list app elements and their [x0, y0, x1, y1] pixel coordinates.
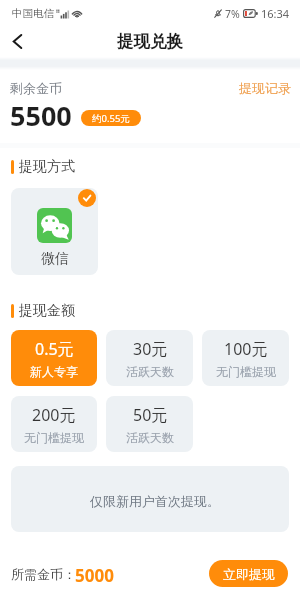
- staticText: 200元: [32, 404, 76, 426]
- staticText: 7%: [225, 7, 240, 21]
- staticText: 100元: [224, 338, 268, 360]
- staticText: 提现记录: [239, 80, 291, 96]
- button[interactable]: 50元: [106, 396, 193, 452]
- staticText: 新人专享: [30, 364, 78, 379]
- staticText: 30元: [133, 338, 168, 360]
- button[interactable]: 30元: [106, 330, 193, 386]
- staticText: 提现兑换: [117, 31, 183, 52]
- button[interactable]: 立即提现: [209, 560, 288, 587]
- staticText: 剩余金币: [10, 80, 62, 96]
- staticText: 0.5元: [35, 338, 74, 360]
- button[interactable]: 微信: [11, 188, 98, 275]
- staticText: 5000: [75, 564, 114, 587]
- button[interactable]: 提现记录: [239, 80, 291, 96]
- button[interactable]: 200元: [11, 396, 97, 452]
- staticText: 中国电信: [12, 7, 54, 20]
- staticText: 提现方式: [19, 158, 75, 176]
- staticText: 50元: [133, 404, 168, 426]
- staticText: 无门槛提现: [216, 364, 276, 379]
- staticText: 约0.55元: [92, 112, 130, 125]
- button[interactable]: 100元: [202, 330, 289, 386]
- button[interactable]: Back: [0, 26, 34, 57]
- staticText: 活跃天数: [126, 364, 174, 379]
- button[interactable]: 0.5元: [11, 330, 97, 386]
- staticText: 立即提现: [223, 566, 275, 582]
- staticText: 5500: [10, 97, 72, 134]
- staticText: 16:34: [261, 6, 290, 21]
- staticText: 活跃天数: [126, 430, 174, 445]
- staticText: 微信: [41, 250, 69, 268]
- staticText: 仅限新用户首次提现。: [90, 493, 220, 509]
- staticText: 所需金币：: [11, 566, 76, 582]
- staticText: 无门槛提现: [24, 430, 84, 445]
- staticText: 提现金额: [19, 302, 75, 320]
